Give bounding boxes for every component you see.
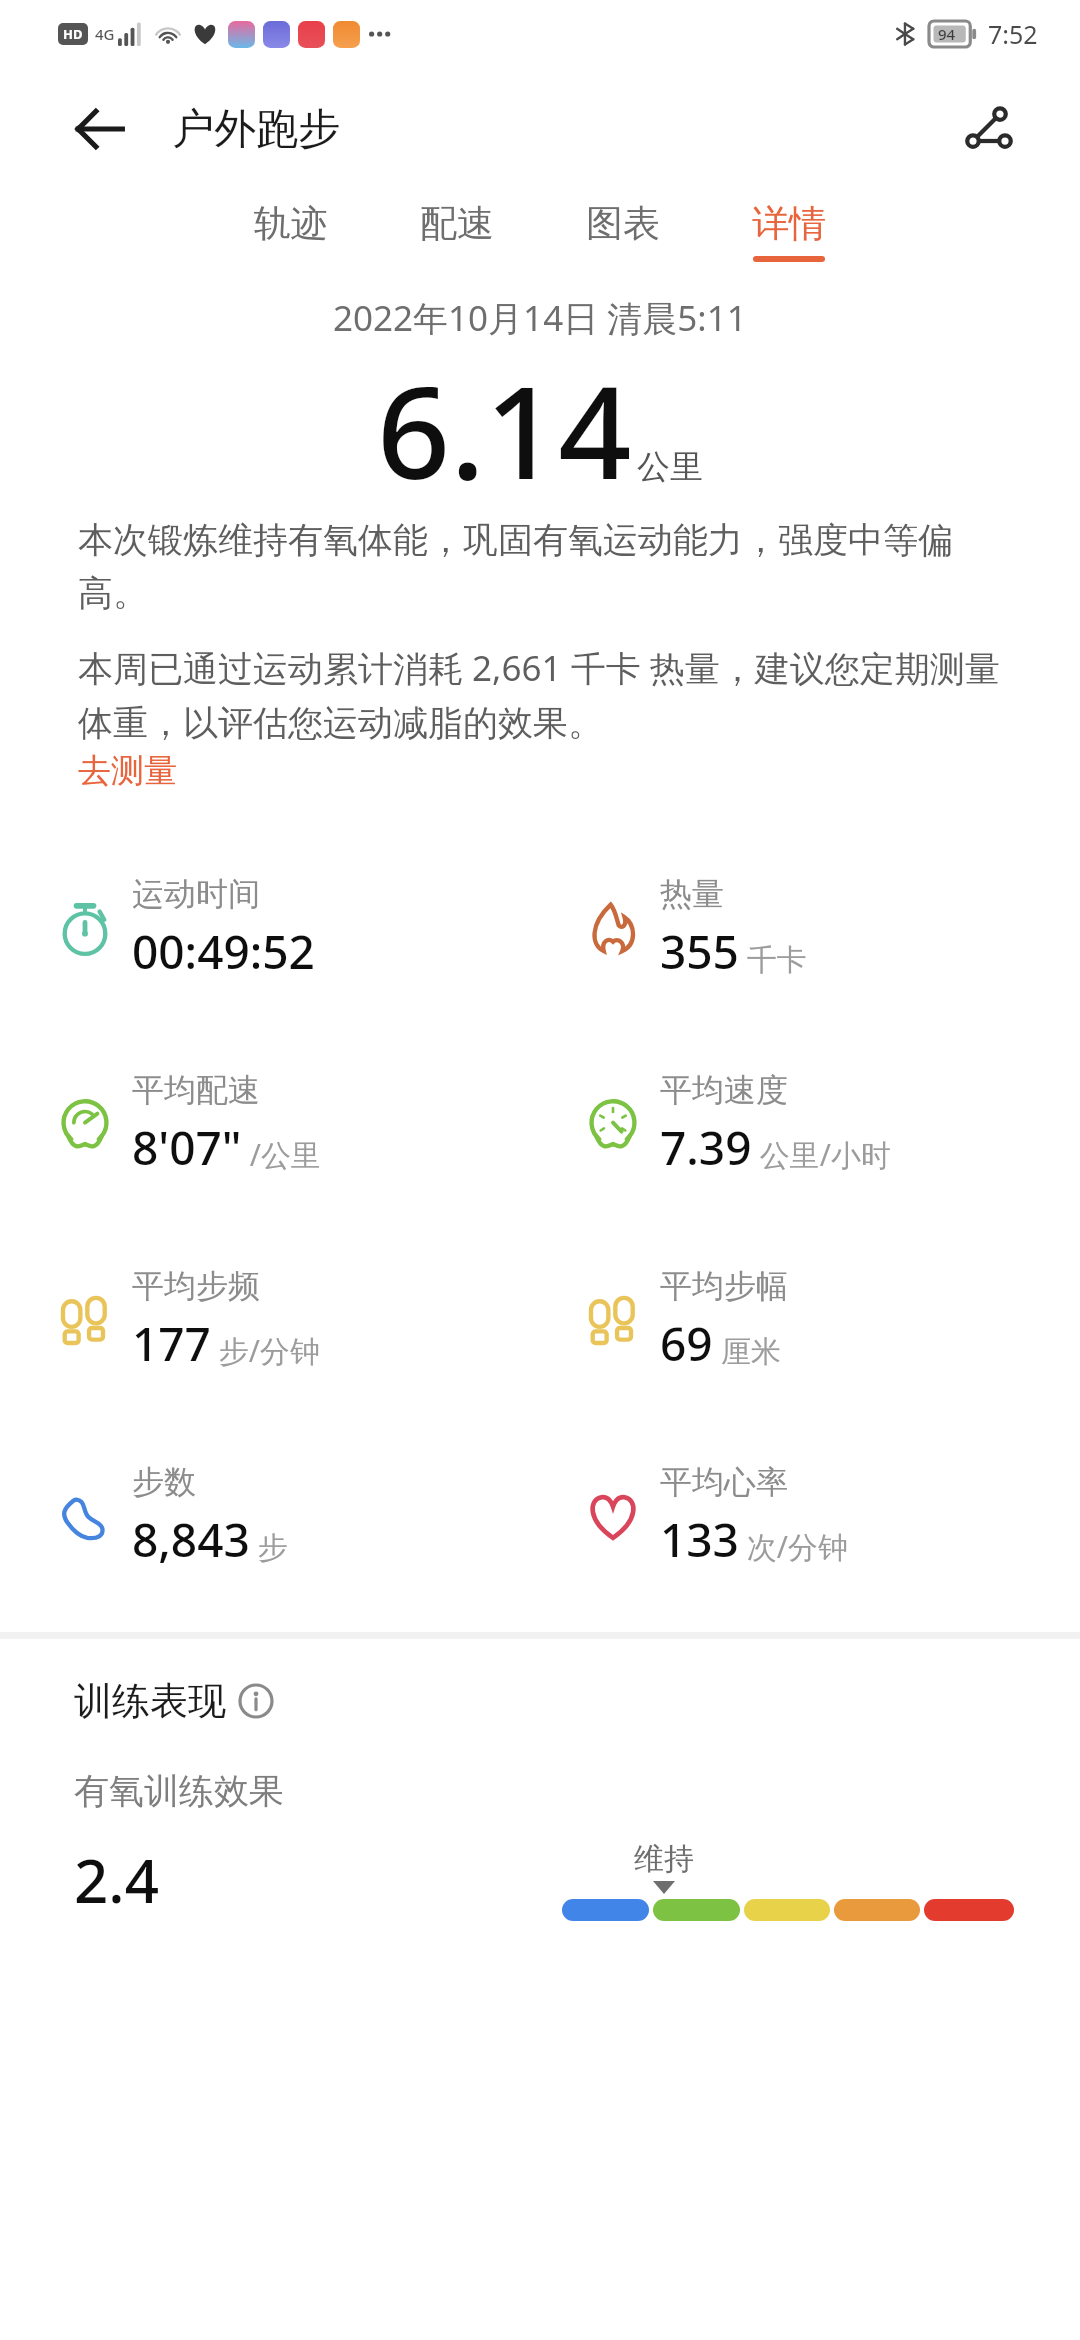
staticText: 7.39	[660, 1116, 752, 1179]
staticText: 有氧训练效果	[74, 1769, 284, 1813]
staticText: 69	[660, 1312, 713, 1375]
button[interactable]: 步数	[0, 1418, 540, 1614]
staticText: 厘米	[713, 1330, 781, 1371]
staticText: 训练表现	[74, 1677, 226, 1725]
staticText: 详情	[752, 200, 826, 247]
button[interactable]: 平均步幅	[540, 1222, 1080, 1418]
staticText: /公里	[242, 1134, 321, 1175]
staticText: 图表	[586, 200, 660, 247]
button[interactable]: 图表	[582, 190, 664, 272]
staticText: 公里	[637, 446, 703, 488]
button[interactable]: 热量	[540, 830, 1080, 1026]
staticText: 355	[660, 920, 739, 983]
staticText: 去测量	[78, 750, 177, 792]
staticText: 步数	[132, 1462, 196, 1502]
staticText: 平均步频	[132, 1266, 260, 1306]
button[interactable]: 去测量	[78, 750, 177, 792]
staticText: 6.14	[377, 342, 632, 502]
staticText: 热量	[660, 874, 724, 914]
staticText: 平均步幅	[660, 1266, 788, 1306]
button[interactable]: 轨迹	[250, 190, 332, 272]
button[interactable]: Share	[946, 86, 1032, 172]
button[interactable]: 平均心率	[540, 1418, 1080, 1614]
button[interactable]: Back	[56, 85, 144, 173]
staticText: 133	[660, 1508, 739, 1571]
staticText: 配速	[420, 200, 494, 247]
staticText: 千卡	[739, 938, 807, 979]
staticText: 4G	[95, 24, 115, 44]
staticText: 平均心率	[660, 1462, 788, 1502]
staticText: 户外跑步	[172, 103, 340, 156]
staticText: 轨迹	[254, 200, 328, 247]
button[interactable]: 详情	[748, 190, 830, 272]
staticText: 2.4	[74, 1839, 159, 1921]
button[interactable]: 平均速度	[540, 1026, 1080, 1222]
staticText: 94	[938, 24, 956, 44]
staticText: 00:49:52	[132, 920, 315, 983]
staticText: 本次锻炼维持有氧体能，巩固有氧运动能力，强度中等偏高。	[78, 518, 1002, 616]
staticText: 步/分钟	[211, 1330, 320, 1371]
button[interactable]: 配速	[416, 190, 498, 272]
staticText: 维持	[634, 1840, 694, 1878]
staticText: 运动时间	[132, 874, 260, 914]
staticText: 8,843	[132, 1508, 250, 1571]
staticText: 7:52	[988, 17, 1038, 51]
staticText: 2022年10月14日 清晨5:11	[333, 294, 747, 342]
staticText: 本周已通过运动累计消耗 2,661 千卡 热量，建议您定期测量体重，以评估您运动…	[78, 644, 1002, 746]
button[interactable]: 训练表现	[74, 1677, 274, 1725]
staticText: HD	[63, 25, 83, 43]
staticText: 平均配速	[132, 1070, 260, 1110]
button[interactable]: 运动时间	[0, 830, 540, 1026]
staticText: 177	[132, 1312, 211, 1375]
button[interactable]: 平均配速	[0, 1026, 540, 1222]
staticText: 公里/小时	[752, 1134, 891, 1175]
staticText: 次/分钟	[739, 1526, 848, 1567]
staticText: 8'07"	[132, 1116, 242, 1179]
button[interactable]: 平均步频	[0, 1222, 540, 1418]
staticText: 步	[250, 1526, 288, 1567]
staticText: 平均速度	[660, 1070, 788, 1110]
